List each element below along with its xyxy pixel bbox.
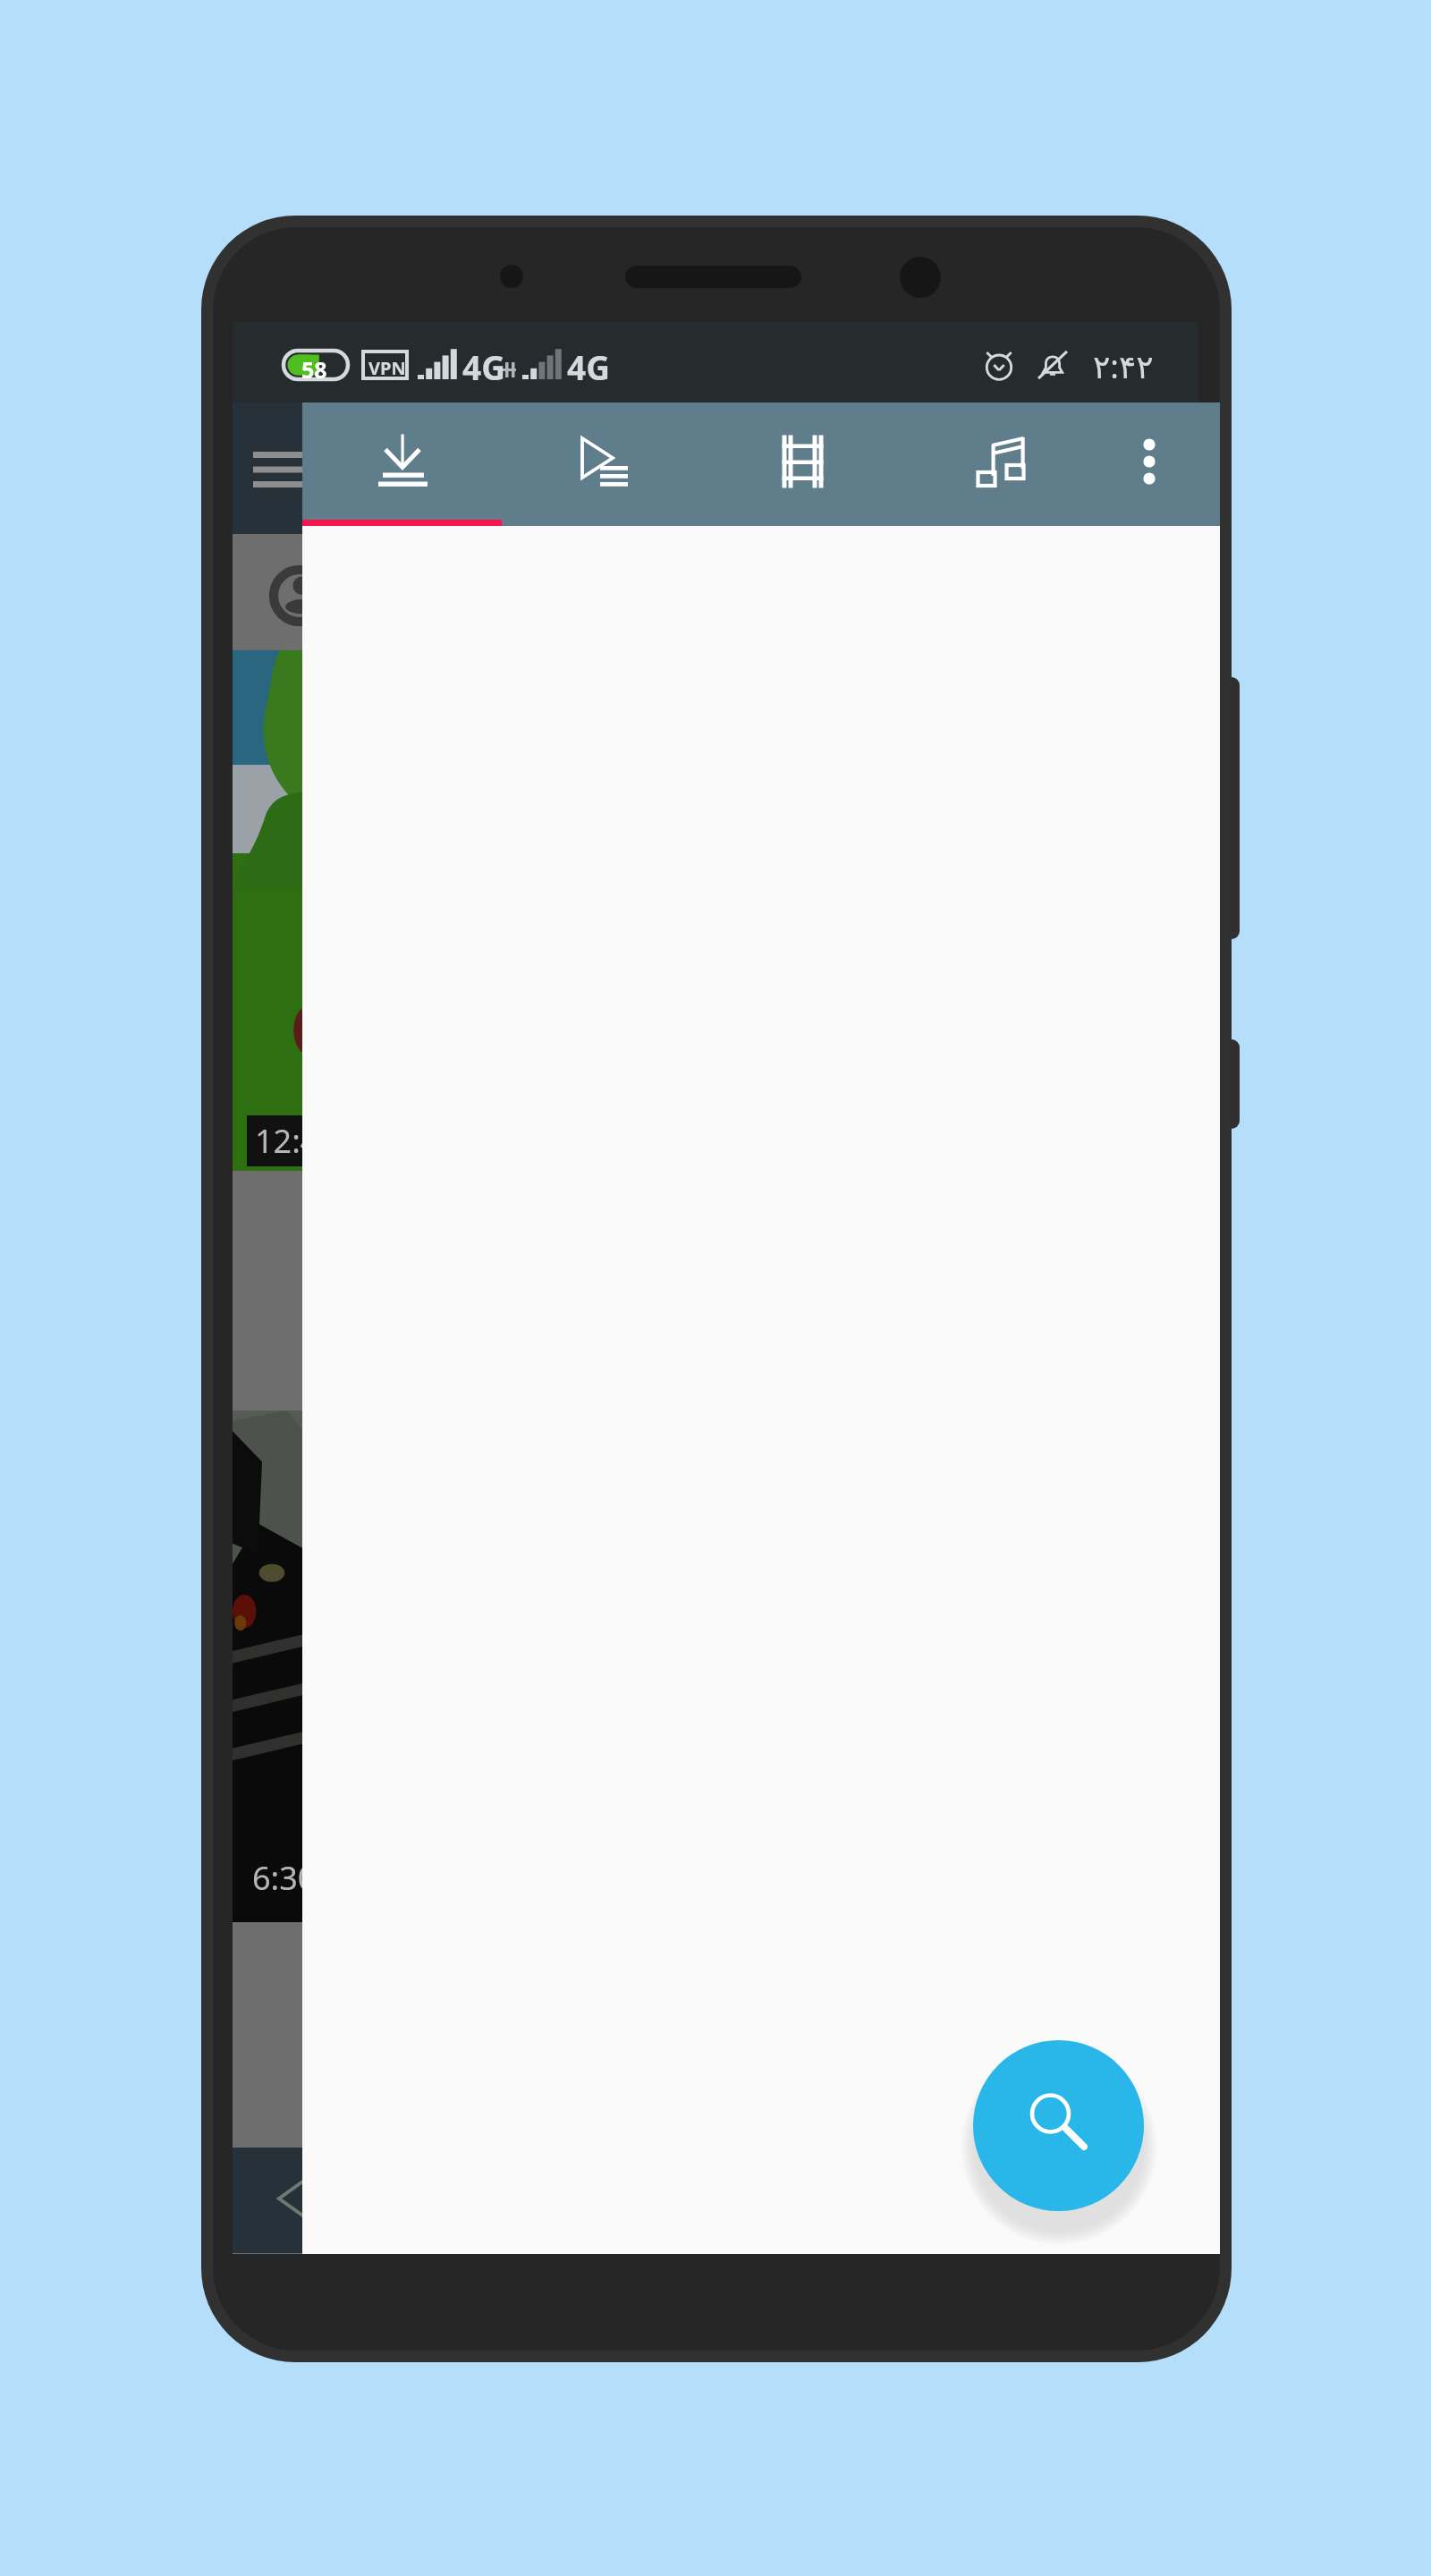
- staticText: 6:30: [252, 1856, 317, 1900]
- staticText: 4G: [462, 344, 505, 389]
- staticText: 4G: [567, 344, 610, 389]
- button[interactable]: Playlists: [502, 402, 701, 520]
- button[interactable]: Search: [973, 2040, 1144, 2211]
- button[interactable]: Open navigation drawer: [233, 425, 340, 514]
- button[interactable]: More options: [1100, 402, 1198, 520]
- staticText: 12:45: [255, 1119, 338, 1163]
- button[interactable]: Downloads: [302, 402, 502, 520]
- staticText: 58: [301, 354, 327, 385]
- staticText: ۲:۴۲: [1093, 344, 1154, 388]
- staticText: VPN: [368, 356, 406, 380]
- button[interactable]: Videos: [701, 402, 903, 520]
- button[interactable]: Back: [252, 2148, 338, 2253]
- button[interactable]: Music: [903, 402, 1100, 520]
